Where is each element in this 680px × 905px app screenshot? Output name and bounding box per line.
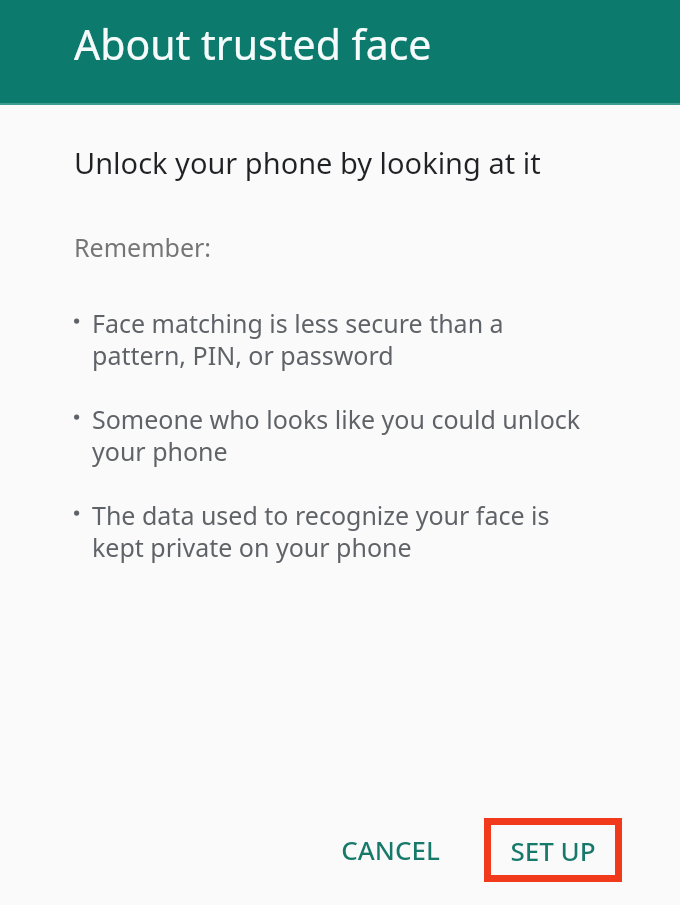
staticText: Face matching is less secure than a patt… [92, 306, 592, 372]
button[interactable]: SET UP [484, 818, 622, 882]
staticText: SET UP [510, 833, 596, 868]
staticText: Unlock your phone by looking at it [74, 143, 541, 182]
staticText: Remember: [74, 230, 212, 264]
staticText: CANCEL [341, 832, 440, 867]
button[interactable]: CANCEL [321, 814, 460, 885]
staticText: The data used to recognize your face is … [92, 498, 592, 564]
staticText: Someone who looks like you could unlock … [92, 402, 592, 468]
staticText: About trusted face [74, 16, 432, 72]
